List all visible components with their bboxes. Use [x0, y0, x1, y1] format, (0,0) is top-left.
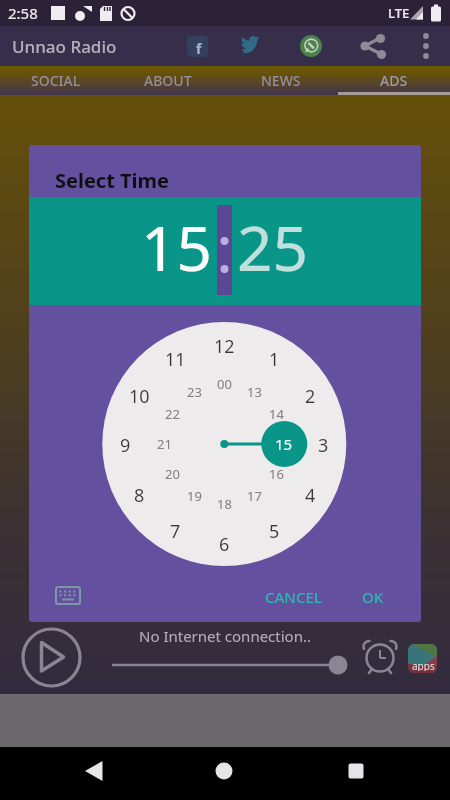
staticText: 4: [305, 483, 316, 505]
button[interactable]: 25: [237, 203, 357, 291]
staticText: 13: [247, 383, 262, 401]
staticText: 23: [187, 383, 202, 401]
button[interactable]: Unnao Radio: [6, 34, 136, 58]
staticText: 1: [269, 347, 280, 369]
staticText: 15: [275, 434, 293, 454]
staticText: 18: [217, 495, 232, 513]
button[interactable]: NEWS: [224, 66, 337, 95]
staticText: 3: [318, 433, 329, 455]
staticText: 22: [165, 405, 180, 423]
staticText: apps: [412, 659, 435, 671]
staticText: CANCEL: [265, 587, 322, 607]
button[interactable]: [359, 33, 385, 59]
staticText: 17: [247, 487, 262, 505]
staticText: Select Time: [55, 167, 170, 194]
staticText: Unnao Radio: [12, 35, 117, 58]
staticText: 2: [305, 384, 316, 406]
button[interactable]: [341, 756, 371, 786]
button[interactable]: [412, 33, 436, 59]
staticText: 25: [237, 205, 308, 289]
staticText: 8: [134, 483, 145, 505]
staticText: ADS: [380, 71, 408, 90]
staticText: 21: [157, 435, 172, 453]
staticText: NEWS: [261, 71, 301, 90]
staticText: 2:58: [8, 3, 38, 23]
button[interactable]: [79, 756, 109, 786]
button[interactable]: [51, 583, 91, 613]
staticText: 11: [165, 347, 186, 369]
button[interactable]: apps: [408, 644, 437, 673]
staticText: 12: [214, 334, 235, 356]
button[interactable]: f: [184, 33, 210, 59]
staticText: 20: [165, 465, 180, 483]
staticText: 14: [269, 405, 284, 423]
staticText: 16: [269, 465, 284, 483]
staticText: f: [196, 39, 202, 55]
button[interactable]: ADS: [337, 66, 450, 95]
button[interactable]: ABOUT: [112, 66, 224, 95]
button[interactable]: CANCEL: [255, 583, 331, 611]
button[interactable]: 15: [92, 203, 212, 291]
staticText: LTE: [388, 4, 410, 22]
staticText: 6: [219, 532, 230, 554]
staticText: 7: [170, 519, 181, 541]
staticText: 9: [120, 433, 131, 455]
staticText: 15: [141, 205, 212, 289]
button[interactable]: [209, 756, 239, 786]
button[interactable]: [239, 33, 265, 59]
staticText: OK: [362, 587, 384, 607]
button[interactable]: OK: [350, 583, 396, 611]
staticText: SOCIAL: [31, 71, 81, 90]
staticText: 19: [187, 487, 202, 505]
button[interactable]: [298, 33, 324, 59]
staticText: ABOUT: [144, 71, 192, 90]
staticText: 5: [269, 519, 280, 541]
staticText: 10: [129, 384, 150, 406]
staticText: 00: [217, 375, 232, 393]
staticText: No Internet connection..: [139, 626, 311, 646]
button[interactable]: SOCIAL: [0, 66, 112, 95]
